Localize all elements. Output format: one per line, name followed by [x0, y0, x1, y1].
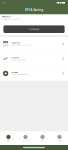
button[interactable]: Profile — [51, 131, 68, 145]
staticText: Enter and track your score — [11, 44, 31, 46]
staticText: STATISTICS — [11, 57, 19, 59]
staticText: Stats — [41, 140, 44, 142]
staticText: Main Course — [2, 16, 11, 18]
staticText: Courses — [22, 140, 29, 142]
staticText: Configure preferences — [11, 74, 29, 75]
staticText: 18 Holes · Par 72 · 6,842 yds — [2, 18, 20, 20]
staticText: Profile — [57, 140, 62, 142]
button[interactable]: SCORECARD — [0, 37, 68, 51]
staticText: START ROUND — [29, 28, 39, 30]
button[interactable]: Courses — [17, 131, 34, 145]
staticText: SETTINGS — [11, 71, 18, 73]
staticText: SCORECARD — [11, 42, 20, 44]
staticText: 9:41 — [3, 2, 6, 4]
staticText: View your round stats — [11, 59, 26, 61]
button[interactable]: Play — [0, 131, 17, 145]
button[interactable]: Stats — [34, 131, 51, 145]
staticText: GPS & Scoring — [24, 8, 43, 12]
staticText: Play — [7, 140, 10, 142]
button[interactable]: SETTINGS — [0, 66, 68, 81]
button[interactable]: STATISTICS — [0, 52, 68, 66]
button[interactable]: START ROUND — [3, 25, 65, 33]
